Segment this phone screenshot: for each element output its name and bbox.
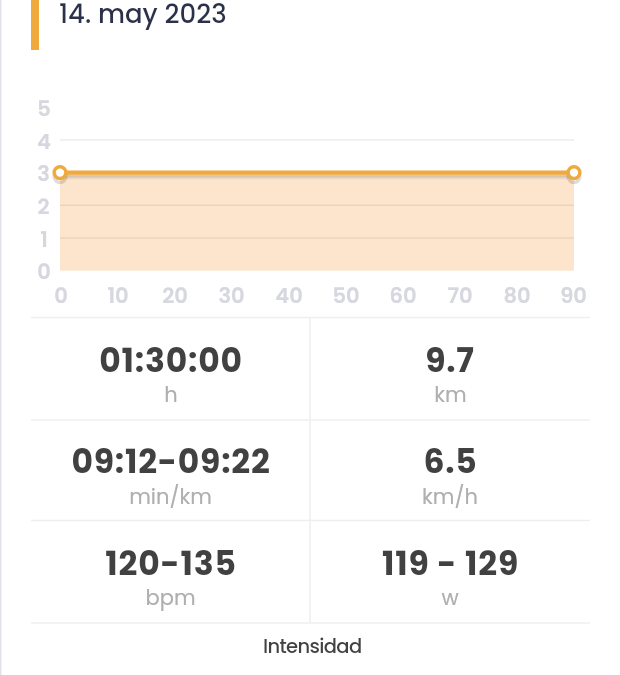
staticText: 01:30:00 (99, 337, 243, 383)
staticText: 14. may 2023 (59, 0, 227, 32)
staticText: 80 (503, 281, 531, 310)
staticText: 120-135 (105, 540, 237, 586)
staticText: min/km (129, 482, 212, 511)
staticText: 1 (40, 225, 48, 254)
staticText: 0 (37, 257, 51, 286)
staticText: 0 (54, 281, 68, 310)
staticText: h (164, 380, 178, 409)
staticText: 40 (275, 281, 303, 310)
staticText: 119 - 129 (382, 540, 519, 586)
staticText: w (441, 583, 459, 612)
staticText: 70 (447, 281, 473, 310)
staticText: 20 (162, 281, 188, 310)
staticText: 90 (560, 281, 587, 310)
staticText: 4 (37, 127, 51, 156)
staticText: 6.5 (423, 438, 478, 484)
staticText: km/h (422, 482, 478, 511)
staticText: 2 (37, 192, 50, 221)
staticText: 10 (107, 281, 129, 310)
staticText: 30 (218, 281, 245, 310)
staticText: 09:12-09:22 (71, 438, 271, 484)
staticText: 5 (37, 94, 51, 123)
staticText: 3 (37, 159, 50, 188)
staticText: bpm (145, 583, 196, 612)
staticText: km (434, 380, 467, 409)
staticText: 50 (332, 281, 360, 310)
staticText: 60 (389, 281, 417, 310)
staticText: 9.7 (425, 337, 475, 383)
staticText: Intensidad (263, 633, 362, 660)
